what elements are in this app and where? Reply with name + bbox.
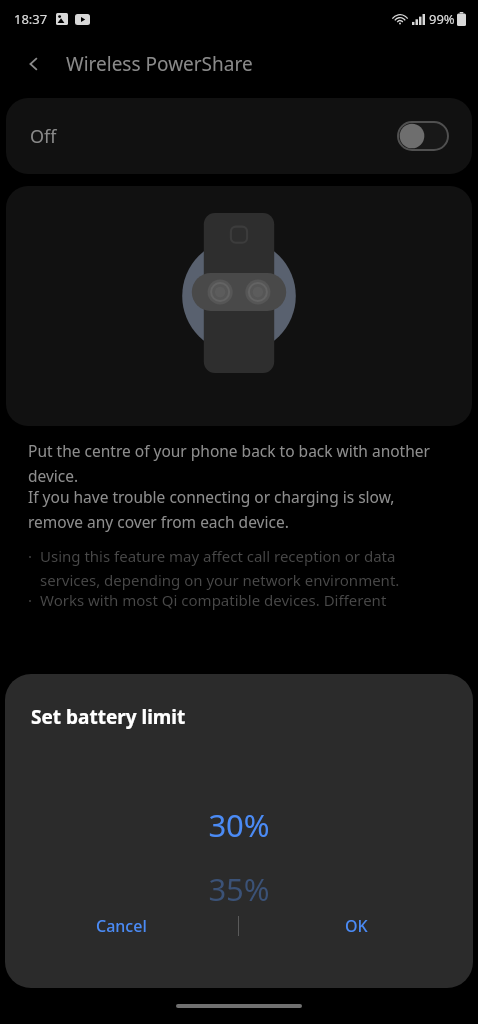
staticText: Off bbox=[30, 124, 57, 149]
staticText: · bbox=[28, 546, 40, 566]
staticText: 18:37 bbox=[14, 10, 48, 28]
button[interactable]: OK bbox=[239, 900, 473, 952]
staticText: · bbox=[28, 590, 40, 610]
staticText: OK bbox=[345, 915, 368, 937]
button[interactable]: Back bbox=[12, 42, 56, 86]
staticText: Put the centre of your phone back to bac… bbox=[28, 440, 450, 486]
staticText: Using this feature may affect call recep… bbox=[40, 546, 450, 590]
button[interactable]: Off bbox=[6, 98, 472, 174]
staticText: Cancel bbox=[96, 915, 147, 937]
button[interactable]: 35% bbox=[5, 868, 473, 910]
button[interactable]: Cancel bbox=[5, 900, 238, 952]
staticText: 99% bbox=[429, 10, 455, 28]
staticText: Wireless PowerShare bbox=[66, 51, 253, 77]
button[interactable]: 30% bbox=[5, 804, 473, 846]
staticText: Works with most Qi compatible devices. D… bbox=[40, 590, 387, 610]
staticText: If you have trouble connecting or chargi… bbox=[28, 486, 450, 532]
staticText: Set battery limit bbox=[31, 704, 186, 730]
